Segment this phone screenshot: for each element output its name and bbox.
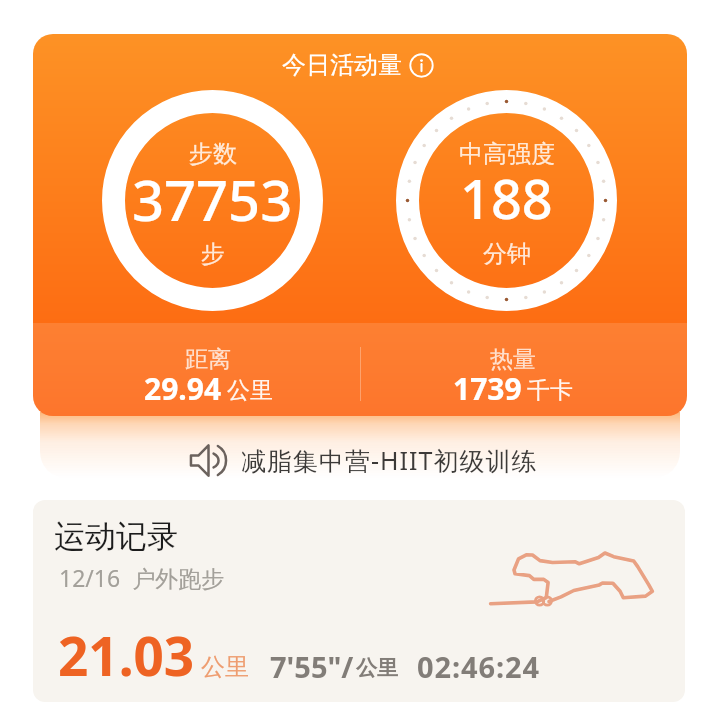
button[interactable]: Audio	[189, 435, 549, 485]
staticText: 37753	[132, 161, 293, 237]
staticText: 7'55"/	[270, 647, 354, 686]
other: Audio	[189, 444, 228, 477]
staticText: 21.03	[58, 619, 195, 691]
staticText: 分钟	[483, 239, 531, 269]
staticText: 千卡	[527, 376, 573, 405]
staticText: 中高强度	[459, 139, 555, 169]
staticText: 热量	[490, 345, 536, 374]
staticText: 188	[460, 161, 553, 235]
staticText: 02:46:24	[417, 647, 541, 686]
staticText: 减脂集中营-HIIT初级训练	[241, 443, 538, 477]
staticText: 步数	[189, 139, 237, 169]
staticText: 公里	[356, 655, 398, 681]
staticText: 距离	[185, 345, 231, 374]
staticText: 步	[201, 239, 225, 269]
staticText: 29.94	[144, 368, 222, 409]
staticText: 12/16 户外跑步	[59, 562, 225, 593]
staticText: 运动记录	[54, 517, 178, 556]
button[interactable]: 今日活动量	[33, 34, 687, 416]
staticText: 今日活动量	[282, 50, 402, 80]
staticText: 公里	[227, 376, 273, 405]
button[interactable]: 运动记录	[33, 500, 685, 702]
staticText: 1739	[453, 368, 522, 409]
staticText: 公里	[201, 652, 249, 682]
